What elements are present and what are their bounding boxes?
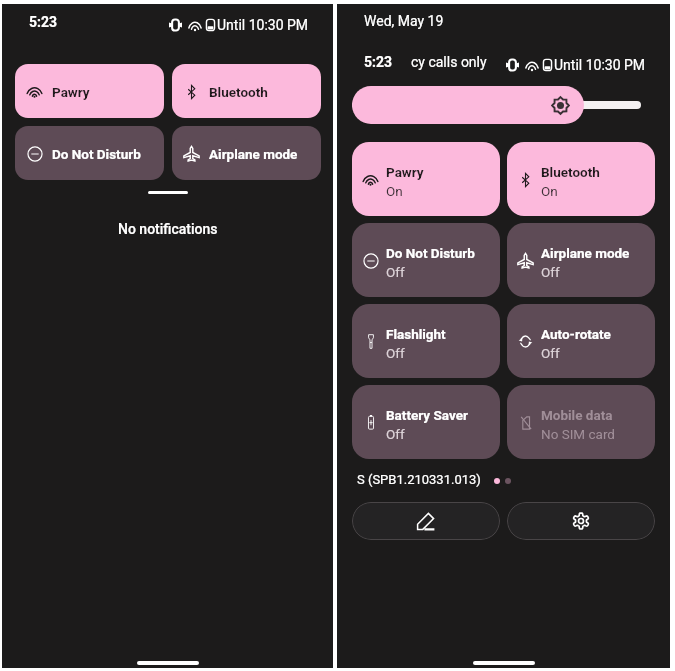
staticText: Off <box>386 426 405 442</box>
staticText: Bluetooth <box>209 84 268 100</box>
staticText: Until 10:30 PM <box>554 57 646 73</box>
staticText: Off <box>386 345 405 361</box>
staticText: Do Not Disturb <box>386 245 475 261</box>
staticText: Do Not Disturb <box>52 146 141 162</box>
staticText: cy calls only <box>411 54 487 70</box>
button[interactable]: Mobile data <box>507 385 655 459</box>
staticText: Off <box>386 264 405 280</box>
button[interactable]: Do Not Disturb <box>352 223 500 297</box>
button[interactable]: Airplane mode <box>172 126 321 180</box>
staticText: Wed, May 19 <box>364 13 444 29</box>
button[interactable]: Pawry <box>352 142 500 216</box>
button[interactable]: Pawry <box>15 64 164 118</box>
staticText: On <box>541 183 558 199</box>
staticText: On <box>386 183 403 199</box>
staticText: S (SPB1.210331.013) <box>357 472 481 487</box>
button[interactable]: Flashlight <box>352 304 500 378</box>
staticText: Auto-rotate <box>541 326 611 342</box>
staticText: No SIM card <box>541 426 615 442</box>
staticText: Pawry <box>52 84 90 100</box>
button[interactable]: Auto-rotate <box>507 304 655 378</box>
button[interactable]: Bluetooth <box>507 142 655 216</box>
staticText: Off <box>541 264 560 280</box>
staticText: Airplane mode <box>541 245 630 261</box>
button[interactable]: Battery Saver <box>352 385 500 459</box>
button[interactable]: Airplane mode <box>507 223 655 297</box>
button[interactable]: Bluetooth <box>172 64 321 118</box>
staticText: 5:23 <box>364 54 393 70</box>
button[interactable]: Do Not Disturb <box>15 126 164 180</box>
staticText: Battery Saver <box>386 407 468 423</box>
staticText: Mobile data <box>541 407 613 423</box>
staticText: Airplane mode <box>209 146 298 162</box>
button[interactable]: Edit <box>352 502 500 540</box>
staticText: No notifications <box>118 221 218 237</box>
staticText: Flashlight <box>386 326 446 342</box>
staticText: Bluetooth <box>541 164 600 180</box>
button[interactable]: Settings <box>507 502 655 540</box>
staticText: Until 10:30 PM <box>217 17 309 33</box>
button[interactable]: Brightness <box>352 86 584 124</box>
staticText: Off <box>541 345 560 361</box>
staticText: Pawry <box>386 164 424 180</box>
staticText: 5:23 <box>29 14 58 30</box>
